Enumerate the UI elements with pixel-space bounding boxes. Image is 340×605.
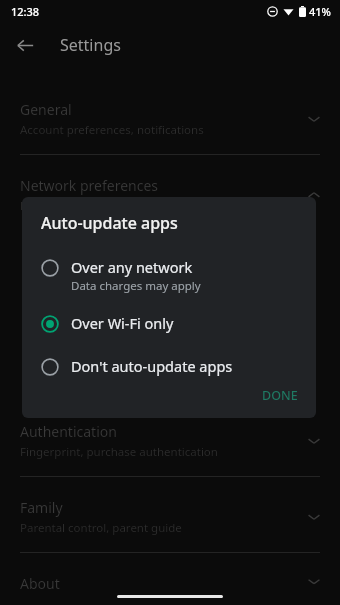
button[interactable]: Family <box>0 484 340 552</box>
button[interactable]: Authentication <box>0 408 340 476</box>
staticText: Authentication <box>20 422 117 441</box>
button[interactable]: General <box>0 86 340 154</box>
button[interactable]: About <box>0 560 340 605</box>
staticText: Parental control, parent guide <box>20 520 182 536</box>
button[interactable]: DONE <box>254 382 306 409</box>
staticText: 12:38 <box>11 4 40 19</box>
staticText: Network preferences <box>20 176 159 195</box>
button[interactable]: Back <box>8 28 42 62</box>
staticText: Account preferences, notifications <box>20 122 204 138</box>
staticText: Data charges may apply <box>71 278 201 294</box>
staticText: Don't auto-update apps <box>71 356 233 376</box>
staticText: Over Wi-Fi only <box>71 313 174 333</box>
button[interactable]: Over Wi-Fi only <box>22 307 316 339</box>
staticText: Auto-update apps <box>41 212 178 234</box>
staticText: DONE <box>262 387 298 404</box>
staticText: Over any network <box>71 257 193 277</box>
staticText: About <box>20 574 60 589</box>
button[interactable]: Don't auto-update apps <box>22 350 316 382</box>
button[interactable]: Over any network <box>22 251 316 300</box>
staticText: Settings <box>60 34 121 56</box>
staticText: General <box>20 100 72 119</box>
staticText: Family <box>20 498 63 517</box>
staticText: Fingerprint, purchase authentication <box>20 444 218 460</box>
button[interactable]: Network preferences <box>0 162 340 230</box>
staticText: 41% <box>309 4 331 19</box>
